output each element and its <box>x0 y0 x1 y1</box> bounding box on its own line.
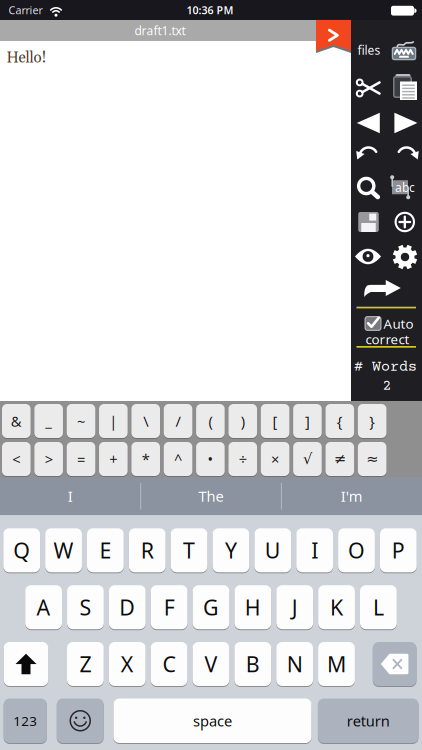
button[interactable]: Hide keyboard <box>392 41 416 60</box>
button[interactable]: / <box>164 404 192 438</box>
staticText: ~ <box>77 411 85 431</box>
button[interactable]: J <box>276 585 313 629</box>
button[interactable]: C <box>151 642 187 686</box>
staticText: + <box>109 449 117 469</box>
staticText: The <box>198 486 223 506</box>
staticText: K <box>330 593 343 621</box>
staticText: < <box>12 449 20 469</box>
button[interactable]: _ <box>34 404 63 438</box>
button[interactable]: Undo <box>356 145 381 160</box>
button[interactable]: P <box>380 528 417 572</box>
staticText: files <box>357 42 380 58</box>
staticText: > <box>45 449 53 469</box>
staticText: L <box>373 593 384 621</box>
staticText: Hello! <box>6 49 46 68</box>
button[interactable]: [ <box>261 404 289 438</box>
button[interactable]: I'm <box>283 477 421 515</box>
staticText: Carrier <box>8 3 42 17</box>
button[interactable]: Add <box>394 211 415 232</box>
button[interactable]: space <box>113 698 311 743</box>
button[interactable]: L <box>360 585 397 629</box>
button[interactable]: S <box>67 585 104 629</box>
staticText: X <box>121 650 134 678</box>
button[interactable]: ( <box>196 404 225 438</box>
button[interactable]: Forward <box>394 113 417 133</box>
button[interactable]: I <box>296 528 333 572</box>
button[interactable]: O <box>338 528 375 572</box>
button[interactable]: B <box>234 642 271 686</box>
button[interactable]: • <box>196 442 225 476</box>
staticText: ÷ <box>239 449 247 469</box>
button[interactable]: return <box>318 698 418 743</box>
button[interactable]: Auto <box>358 315 418 348</box>
button[interactable]: * <box>131 442 160 476</box>
staticText: I'm <box>341 486 363 506</box>
button[interactable]: Redo <box>394 145 419 160</box>
button[interactable]: V <box>193 642 229 686</box>
button[interactable]: F <box>151 585 188 629</box>
button[interactable]: Open files <box>316 20 351 56</box>
button[interactable]: A <box>25 585 62 629</box>
button[interactable]: × <box>261 442 289 476</box>
button[interactable]: Share <box>364 280 401 297</box>
button[interactable]: Emoji <box>57 698 104 743</box>
button[interactable]: 123 <box>4 698 47 743</box>
button[interactable]: The <box>142 477 280 515</box>
button[interactable]: Save <box>358 212 379 232</box>
button[interactable]: Preview <box>355 248 381 264</box>
button[interactable]: ^ <box>164 442 192 476</box>
button[interactable]: R <box>129 528 166 572</box>
button[interactable]: ) <box>228 404 257 438</box>
button[interactable]: T <box>171 528 207 572</box>
button[interactable]: > <box>34 442 63 476</box>
staticText: ^ <box>174 449 182 469</box>
button[interactable]: Cut <box>356 77 380 99</box>
staticText: F <box>164 593 175 621</box>
button[interactable]: K <box>318 585 355 629</box>
button[interactable]: < <box>2 442 31 476</box>
button[interactable]: Search <box>357 177 380 200</box>
staticText: 2 <box>382 378 391 395</box>
staticText: P <box>392 536 405 564</box>
button[interactable]: E <box>87 528 124 572</box>
button[interactable]: = <box>67 442 95 476</box>
staticText: E <box>99 536 111 564</box>
button[interactable]: √ <box>293 442 322 476</box>
button[interactable]: W <box>45 528 82 572</box>
button[interactable]: ≈ <box>358 442 386 476</box>
button[interactable]: ] <box>293 404 322 438</box>
button[interactable]: + <box>99 442 128 476</box>
button[interactable]: { <box>325 404 354 438</box>
button[interactable]: Paste <box>393 74 417 100</box>
button[interactable]: N <box>276 642 313 686</box>
button[interactable]: I <box>1 477 139 515</box>
button[interactable]: Y <box>213 528 249 572</box>
button[interactable]: Z <box>67 642 104 686</box>
button[interactable]: \ <box>131 404 160 438</box>
button[interactable]: ÷ <box>228 442 257 476</box>
staticText: J <box>292 593 298 621</box>
button[interactable]: M <box>318 642 355 686</box>
staticText: ( <box>208 411 212 431</box>
button[interactable]: | <box>99 404 128 438</box>
button[interactable]: & <box>2 404 31 438</box>
staticText: abc <box>395 179 415 195</box>
button[interactable]: Spell check <box>390 175 419 201</box>
button[interactable]: Shift <box>4 642 48 686</box>
staticText: M <box>327 650 346 678</box>
button[interactable]: } <box>358 404 386 438</box>
button[interactable]: H <box>234 585 271 629</box>
staticText: ) <box>241 411 245 431</box>
button[interactable]: X <box>109 642 146 686</box>
button[interactable]: D <box>109 585 146 629</box>
button[interactable]: ≠ <box>325 442 354 476</box>
button[interactable]: U <box>254 528 291 572</box>
button[interactable]: Delete <box>373 642 416 686</box>
button[interactable]: Back <box>357 113 380 133</box>
button[interactable]: ~ <box>67 404 95 438</box>
button[interactable]: files <box>357 42 380 58</box>
button[interactable]: G <box>193 585 229 629</box>
staticText: draft1.txt <box>134 22 185 38</box>
button[interactable]: Q <box>3 528 40 572</box>
button[interactable]: Settings <box>391 243 418 270</box>
